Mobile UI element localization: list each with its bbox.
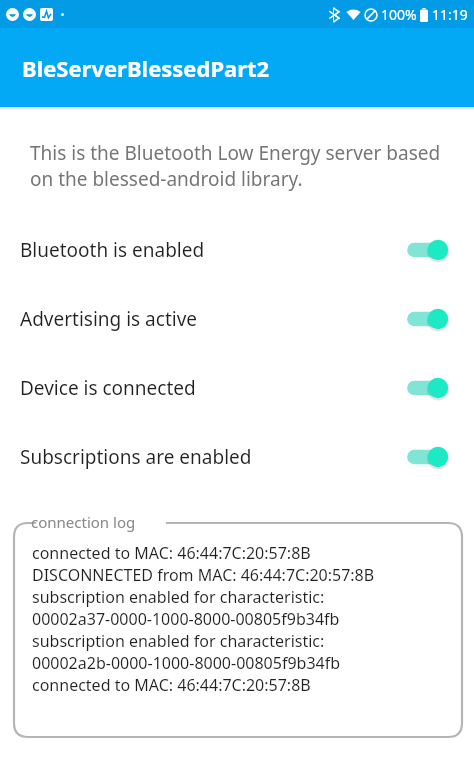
staticText: 00002a37-0000-1000-8000-00805f9b34fb (32, 608, 340, 630)
staticText: connected to MAC: 46:44:7C:20:57:8B (32, 542, 311, 564)
staticText: 100% (381, 5, 417, 24)
staticText: connection log (31, 512, 136, 532)
staticText: Device is connected (20, 375, 404, 401)
button[interactable]: Bluetooth is enabled (0, 215, 474, 284)
button[interactable]: Toggle (404, 440, 456, 474)
button[interactable]: Toggle (404, 371, 456, 405)
staticText: Advertising is active (20, 306, 404, 332)
button[interactable]: Toggle (404, 233, 456, 267)
staticText: subscription enabled for characteristic: (32, 630, 325, 652)
button[interactable]: connection log (14, 513, 462, 737)
staticText: This is the Bluetooth Low Energy server … (30, 140, 448, 191)
staticText: Bluetooth is enabled (20, 237, 404, 263)
button[interactable]: Toggle (404, 302, 456, 336)
staticText: BleServerBlessedPart2 (22, 53, 270, 83)
staticText: connected to MAC: 46:44:7C:20:57:8B (32, 674, 311, 696)
button[interactable]: Subscriptions are enabled (0, 422, 474, 491)
button[interactable]: Advertising is active (0, 284, 474, 353)
staticText: DISCONNECTED from MAC: 46:44:7C:20:57:8B (32, 564, 375, 586)
staticText: Subscriptions are enabled (20, 444, 404, 470)
staticText: 11:19 (432, 5, 468, 24)
staticText: subscription enabled for characteristic: (32, 586, 325, 608)
button[interactable]: Device is connected (0, 353, 474, 422)
staticText: 00002a2b-0000-1000-8000-00805f9b34fb (32, 652, 341, 674)
